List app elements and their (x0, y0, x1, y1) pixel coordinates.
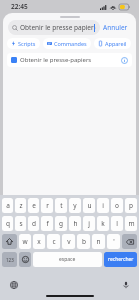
button[interactable]: Clear (95, 24, 96, 31)
button[interactable]: y (69, 198, 81, 213)
staticText: Obtenir le presse-papiers (20, 56, 92, 64)
button[interactable]: q (2, 216, 13, 231)
button[interactable]: j (83, 216, 95, 231)
staticText: Obtenir le presse papier (20, 23, 94, 32)
button[interactable]: w (19, 234, 31, 249)
staticText: rechercher (108, 256, 134, 263)
staticText: k (101, 219, 105, 228)
button[interactable]: b (77, 234, 90, 249)
button[interactable]: t (55, 198, 67, 213)
button[interactable]: n (92, 234, 105, 249)
staticText: v (67, 237, 71, 246)
staticText: o (115, 201, 119, 210)
button[interactable]: k (97, 216, 109, 231)
staticText: q (6, 219, 10, 228)
button[interactable]: o (111, 198, 123, 213)
button[interactable]: z (15, 198, 26, 213)
button[interactable]: r (41, 198, 53, 213)
staticText: p (129, 201, 133, 210)
staticText: Scripts (18, 40, 36, 47)
button[interactable]: Scripts (7, 38, 40, 49)
staticText: e (32, 201, 36, 210)
staticText: a (6, 201, 10, 210)
staticText: i (102, 201, 104, 210)
button[interactable]: c (47, 234, 60, 249)
button[interactable]: v (62, 234, 75, 249)
button[interactable]: s (15, 216, 26, 231)
staticText: Appareil (105, 40, 127, 47)
staticText: 123 (6, 257, 14, 263)
button[interactable]: ' (107, 234, 120, 249)
button[interactable]: l (111, 216, 123, 231)
button[interactable]: 123 (2, 252, 17, 267)
staticText: ' (113, 237, 115, 246)
staticText: Commandes (54, 40, 87, 47)
staticText: u (87, 201, 92, 210)
staticText: h (73, 219, 78, 228)
button[interactable]: Commandes (43, 38, 91, 49)
button[interactable]: Change keyboard (8, 279, 19, 290)
button[interactable]: u (83, 198, 95, 213)
staticText: l (116, 219, 118, 228)
button[interactable]: Dictate (120, 279, 131, 290)
staticText: m (128, 219, 135, 228)
staticText: n (96, 237, 101, 246)
button[interactable]: Backspace (122, 234, 137, 249)
button[interactable]: espace (33, 252, 102, 267)
button[interactable]: h (69, 216, 81, 231)
staticText: w (22, 237, 28, 246)
button[interactable]: a (2, 198, 13, 213)
staticText: d (32, 219, 36, 228)
staticText: x (37, 237, 41, 246)
staticText: s (19, 219, 23, 228)
button[interactable]: e (28, 198, 39, 213)
button[interactable]: Annuler (100, 21, 131, 34)
staticText: g (59, 219, 63, 228)
button[interactable]: i (97, 198, 109, 213)
staticText: 22:45 (11, 2, 28, 11)
button[interactable]: x (33, 234, 45, 249)
button[interactable]: m (125, 216, 137, 231)
button[interactable]: g (55, 216, 67, 231)
staticText: r (46, 201, 49, 210)
button[interactable]: rechercher (104, 252, 137, 267)
staticText: f (46, 219, 49, 228)
staticText: Annuler (103, 23, 128, 32)
staticText: z (19, 201, 23, 210)
staticText: y (73, 201, 77, 210)
button[interactable]: Shift (2, 234, 17, 249)
button[interactable]: p (125, 198, 137, 213)
button[interactable]: Emoji (19, 252, 31, 267)
button[interactable]: Appareil (94, 38, 131, 49)
staticText: t (60, 201, 63, 210)
staticText: b (82, 237, 86, 246)
staticText: j (88, 219, 90, 228)
button[interactable]: d (28, 216, 39, 231)
button[interactable]: Obtenir le presse papier (8, 20, 100, 35)
button[interactable]: f (41, 216, 53, 231)
staticText: espace (59, 256, 76, 263)
button[interactable]: Obtenir le presse-papiers (7, 53, 132, 67)
button[interactable]: Info (120, 56, 128, 64)
staticText: c (52, 237, 56, 246)
